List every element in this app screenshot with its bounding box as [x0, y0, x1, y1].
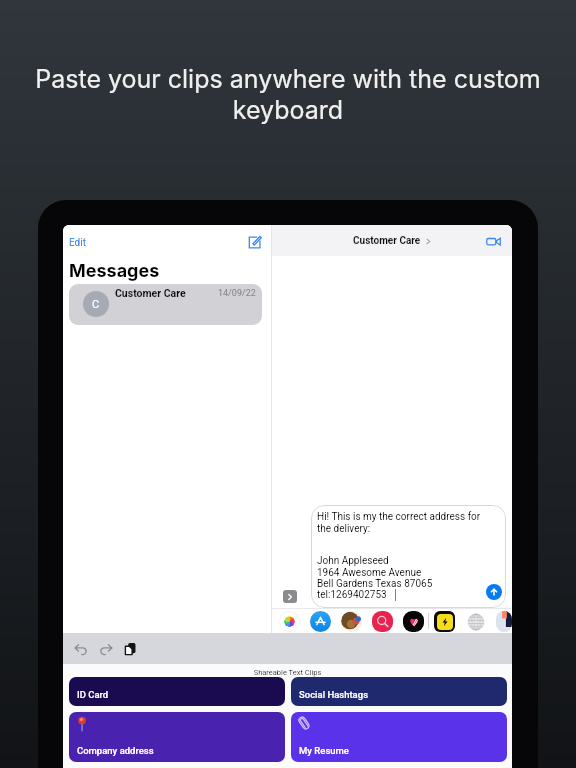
button[interactable]: Paste — [121, 639, 141, 659]
staticText: John Appleseed 1964 Awesome Avenue Bell … — [317, 555, 433, 600]
button[interactable]: Hi! This is my the correct address for t… — [311, 505, 506, 608]
staticText: Shareable Text Clips — [63, 668, 512, 677]
button[interactable]: Company address — [69, 712, 285, 762]
staticText: Messages — [69, 260, 160, 282]
button[interactable]: Social Hashtags — [291, 677, 507, 706]
button[interactable]: Memoji stickers — [341, 611, 362, 632]
button[interactable]: Undo — [71, 639, 91, 659]
button[interactable]: Music — [403, 611, 424, 632]
staticText: Edit — [69, 237, 86, 249]
button[interactable]: App Store — [310, 611, 331, 632]
staticText: My Resume — [299, 745, 349, 756]
staticText: Paste your clips anywhere with the custo… — [14, 64, 562, 125]
staticText: 14/09/22 — [218, 288, 256, 299]
staticText: Social Hashtags — [299, 689, 369, 700]
button[interactable]: New message — [245, 233, 263, 251]
button[interactable]: My Resume — [291, 712, 507, 762]
button[interactable]: Image search — [372, 611, 393, 632]
button[interactable]: Edit — [69, 237, 86, 249]
button[interactable]: C — [69, 284, 262, 325]
staticText: ID Card — [77, 689, 109, 700]
button[interactable]: Globe — [465, 611, 486, 632]
staticText: C — [92, 298, 100, 311]
staticText: Company address — [77, 745, 154, 756]
button[interactable]: FaceTime video call — [483, 231, 503, 251]
button[interactable]: Send — [486, 584, 502, 600]
button[interactable]: Customer Care — [353, 235, 432, 247]
button[interactable]: More apps — [496, 611, 512, 632]
button[interactable]: Show apps — [283, 590, 297, 603]
button[interactable]: Photos — [279, 611, 300, 632]
button[interactable]: Redo — [96, 639, 116, 659]
staticText: Customer Care — [115, 287, 186, 299]
staticText: Hi! This is my the correct address for t… — [317, 511, 481, 534]
button[interactable]: Shortcuts — [434, 611, 455, 632]
staticText: Customer Care — [353, 235, 421, 247]
button[interactable]: ID Card — [69, 677, 285, 706]
